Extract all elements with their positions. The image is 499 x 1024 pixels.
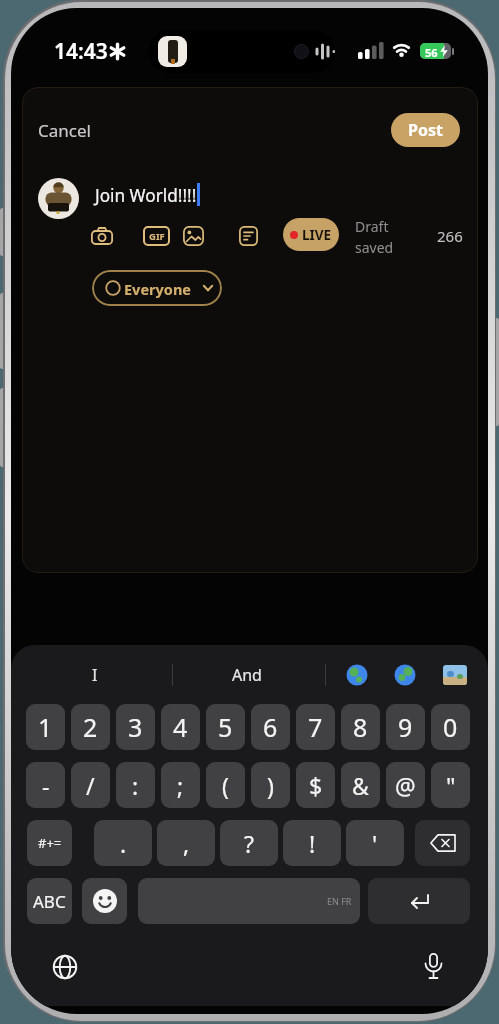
button[interactable]: EN FR [138, 878, 360, 924]
button[interactable]: Everyone [92, 270, 222, 306]
staticText: ( [222, 770, 229, 801]
staticText: , [183, 828, 190, 859]
staticText: / [86, 770, 95, 801]
button[interactable]: @ [386, 762, 425, 808]
button[interactable]: GIF [143, 226, 170, 246]
button[interactable]: Cancel [34, 115, 96, 145]
button[interactable] [423, 953, 444, 980]
button[interactable]: ; [161, 762, 200, 808]
staticText: ) [267, 770, 274, 801]
staticText: 1 [38, 710, 53, 744]
button[interactable]: $ [296, 762, 335, 808]
staticText: 266 [437, 226, 463, 246]
button[interactable]: 6 [251, 704, 290, 750]
button[interactable]: I [55, 659, 135, 691]
staticText: ABC [33, 890, 66, 913]
staticText: 4 [173, 710, 188, 744]
staticText: LIVE [302, 226, 332, 244]
button[interactable] [394, 664, 416, 686]
button[interactable]: . [94, 820, 152, 866]
button[interactable] [52, 954, 78, 980]
staticText: Draft [355, 217, 389, 236]
button[interactable]: ! [283, 820, 341, 866]
button[interactable]: 7 [296, 704, 335, 750]
staticText: - [42, 770, 50, 801]
staticText: 2 [83, 710, 98, 744]
button[interactable]: 8 [341, 704, 380, 750]
staticText: 14:43 [54, 37, 108, 66]
staticText: Post [408, 119, 443, 141]
button[interactable]: 5 [206, 704, 245, 750]
staticText: GIF [149, 230, 165, 243]
staticText: $ [309, 770, 323, 801]
button[interactable]: Post [391, 113, 460, 147]
button[interactable] [415, 820, 470, 866]
staticText: : [132, 770, 139, 801]
button[interactable]: ABC [27, 878, 72, 924]
staticText: 3 [128, 710, 143, 744]
button[interactable]: ? [220, 820, 278, 866]
staticText: ? [244, 828, 254, 859]
button[interactable]: / [71, 762, 110, 808]
button[interactable]: : [116, 762, 155, 808]
button[interactable] [368, 878, 470, 924]
button[interactable]: LIVE [283, 218, 339, 251]
button[interactable]: , [157, 820, 215, 866]
staticText: #+= [38, 834, 62, 852]
staticText: Cancel [38, 119, 91, 142]
staticText: 56 [425, 45, 438, 59]
button[interactable]: 0 [431, 704, 470, 750]
button[interactable]: " [431, 762, 470, 808]
button[interactable]: 4 [161, 704, 200, 750]
button[interactable] [443, 665, 467, 685]
staticText: And [232, 664, 262, 686]
staticText: Everyone [124, 279, 191, 299]
staticText: & [352, 770, 369, 801]
staticText: ; [177, 770, 184, 801]
staticText: ' [372, 828, 378, 859]
button[interactable]: #+= [27, 820, 72, 866]
button[interactable]: 2 [71, 704, 110, 750]
button[interactable] [183, 226, 204, 246]
staticText: Join World!!!! [95, 184, 197, 207]
staticText: @ [395, 770, 416, 801]
button[interactable] [239, 226, 258, 246]
staticText: saved [355, 238, 394, 257]
button[interactable] [91, 227, 113, 245]
staticText: " [446, 770, 456, 801]
button[interactable]: 1 [26, 704, 65, 750]
button[interactable]: ( [206, 762, 245, 808]
staticText: 7 [308, 710, 323, 744]
button[interactable]: 9 [386, 704, 425, 750]
button[interactable]: And [207, 659, 287, 691]
button[interactable]: & [341, 762, 380, 808]
button[interactable] [38, 178, 79, 219]
staticText: 8 [353, 710, 368, 744]
staticText: 0 [443, 710, 458, 744]
staticText: 5 [218, 710, 233, 744]
button[interactable]: ) [251, 762, 290, 808]
staticText: 9 [398, 710, 413, 744]
button[interactable]: - [26, 762, 65, 808]
staticText: 6 [263, 710, 278, 744]
staticText: I [92, 664, 98, 686]
button[interactable] [346, 664, 368, 686]
button[interactable]: 3 [116, 704, 155, 750]
staticText: . [120, 828, 127, 859]
staticText: EN FR [327, 895, 352, 907]
button[interactable] [82, 878, 127, 924]
button[interactable]: ' [346, 820, 404, 866]
staticText: ! [309, 828, 316, 859]
